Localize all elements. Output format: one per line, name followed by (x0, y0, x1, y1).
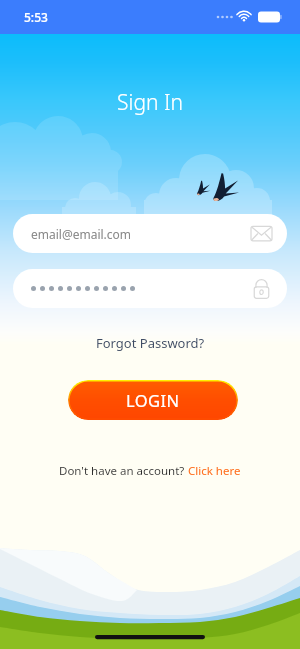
staticText: 5:53 (24, 9, 48, 25)
staticText: LOGIN (126, 389, 180, 411)
button[interactable]: email@email.com (13, 214, 287, 253)
other: Email (252, 224, 271, 243)
other: Password (252, 279, 271, 298)
staticText: Don't have an account? (59, 463, 188, 479)
staticText: Forgot Password? (96, 334, 205, 352)
button[interactable]: Password (13, 269, 287, 308)
staticText: email@email.com (31, 226, 132, 242)
button[interactable]: Click here (188, 463, 241, 479)
button[interactable]: LOGIN (68, 380, 238, 420)
staticText: Sign In (0, 88, 300, 117)
button[interactable]: Forgot Password? (90, 331, 211, 355)
staticText: Click here (188, 463, 241, 479)
